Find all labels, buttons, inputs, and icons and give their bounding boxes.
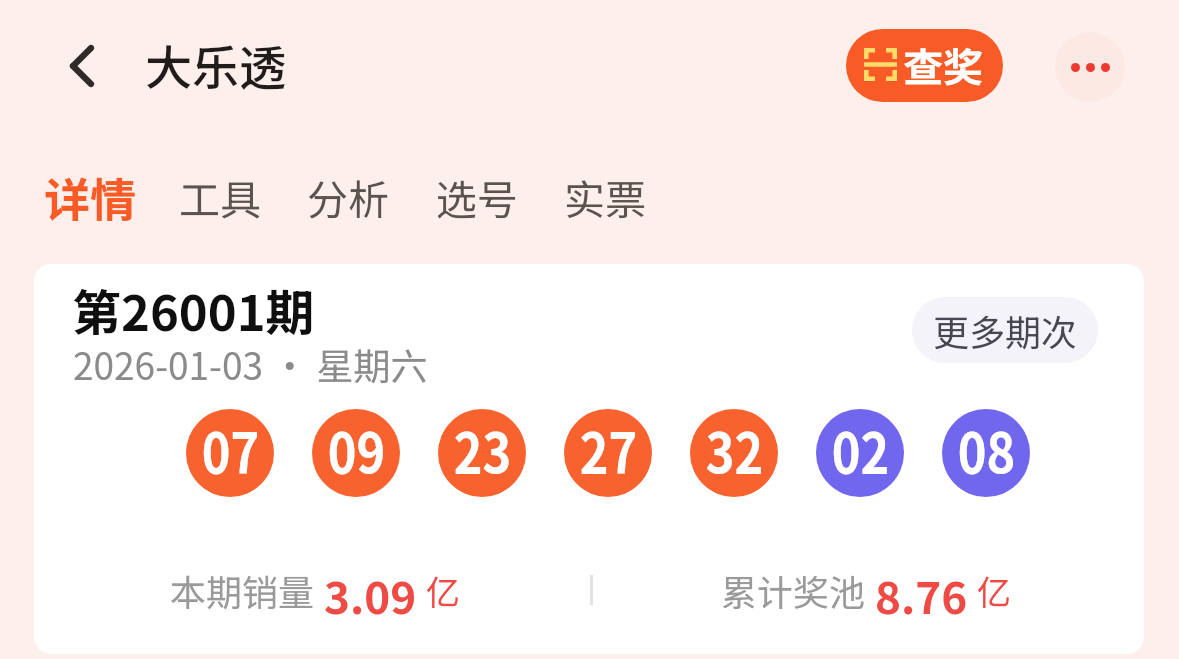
- staticText: 亿: [977, 566, 1011, 615]
- button[interactable]: 选号: [416, 151, 538, 242]
- staticText: 实票: [564, 167, 646, 226]
- staticText: 2026-01-03 · 星期六: [73, 337, 428, 391]
- staticText: 分析: [307, 167, 389, 226]
- button[interactable]: 查奖: [846, 29, 1003, 102]
- staticText: 27: [579, 409, 638, 489]
- staticText: 累计奖池: [721, 564, 866, 616]
- staticText: 详情: [44, 164, 136, 231]
- button[interactable]: Back: [52, 36, 112, 96]
- staticText: 更多期次: [933, 304, 1078, 356]
- button[interactable]: 详情: [24, 148, 156, 247]
- staticText: 8.76: [875, 563, 968, 615]
- button[interactable]: 分析: [287, 151, 409, 242]
- button[interactable]: 更多期次: [912, 297, 1098, 363]
- staticText: 07: [201, 409, 260, 489]
- staticText: 选号: [436, 167, 518, 226]
- staticText: 3.09: [324, 563, 417, 615]
- staticText: 第26001期: [72, 274, 315, 345]
- staticText: 23: [453, 409, 512, 489]
- staticText: 查奖: [903, 36, 983, 94]
- staticText: 大乐透: [145, 30, 286, 98]
- staticText: 本期销量: [170, 564, 315, 616]
- staticText: 08: [957, 409, 1016, 489]
- staticText: 32: [705, 409, 764, 489]
- staticText: 02: [831, 409, 890, 489]
- staticText: 亿: [426, 566, 460, 615]
- button[interactable]: 实票: [544, 151, 666, 242]
- button[interactable]: More options: [1055, 32, 1125, 102]
- staticText: 09: [327, 409, 386, 489]
- staticText: 工具: [179, 167, 261, 226]
- button[interactable]: 工具: [159, 151, 281, 242]
